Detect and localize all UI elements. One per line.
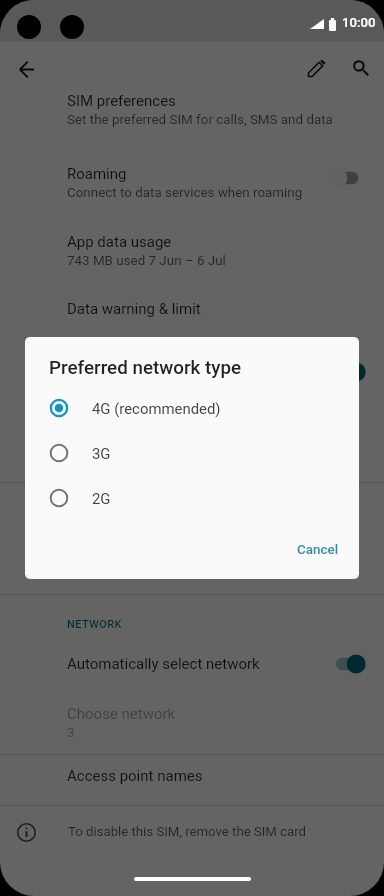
button[interactable]: Edit (297, 48, 337, 88)
button[interactable]: Access point names (0, 760, 384, 806)
staticText: Preferred network type (49, 357, 242, 379)
staticText: To disable this SIM, remove the SIM card (68, 824, 306, 839)
staticText: Choose network (67, 705, 176, 723)
button[interactable]: 3G (25, 431, 359, 475)
staticText: SIM preferences (67, 92, 176, 110)
staticText: Preferred network type (67, 346, 219, 364)
staticText: 2G (92, 490, 111, 507)
staticText: 743 MB used 7 Jun – 6 Jul (67, 253, 226, 269)
button[interactable]: Cancel (289, 536, 347, 564)
staticText: NETWORK (67, 618, 122, 631)
button[interactable]: Network operators (0, 538, 384, 584)
staticText: 3G (92, 445, 111, 462)
button[interactable]: 2G (25, 476, 359, 520)
button[interactable]: 4G (recommended) (25, 386, 359, 430)
staticText: Roaming (67, 165, 127, 183)
staticText: 4G (recommended) (92, 400, 221, 417)
staticText: 10:00 (342, 15, 376, 30)
button[interactable]: Automatically select network (0, 648, 384, 694)
staticText: Use LTE services to improve voice (67, 434, 268, 450)
staticText: Cancel (297, 542, 339, 558)
button[interactable]: Search (341, 48, 381, 88)
button[interactable]: Enhanced 4G LTE Mode (0, 407, 384, 475)
staticText: Set the preferred SIM for calls, SMS and… (67, 112, 333, 128)
button[interactable]: Data warning & limit (0, 293, 384, 339)
staticText: Access point names (67, 499, 203, 517)
staticText: 3 (67, 725, 75, 741)
button[interactable]: To disable this SIM, remove the SIM card (0, 806, 384, 858)
staticText: 4G (recommended) (67, 366, 183, 382)
button[interactable]: App data usage (0, 226, 384, 294)
staticText: Automatically select network (67, 655, 260, 673)
staticText: Connect to data services when roaming (67, 185, 303, 201)
staticText: Access point names (67, 767, 203, 785)
button[interactable]: Choose network (0, 698, 384, 766)
staticText: Enhanced 4G LTE Mode (67, 414, 225, 432)
button[interactable]: Roaming (0, 158, 384, 226)
staticText: App data usage (67, 233, 172, 251)
button[interactable]: Preferred network type (0, 339, 384, 407)
staticText: Data warning & limit (67, 300, 201, 318)
button[interactable]: SIM preferences (0, 85, 384, 153)
button[interactable]: Back (7, 49, 47, 89)
button[interactable]: Access point names (0, 492, 384, 538)
